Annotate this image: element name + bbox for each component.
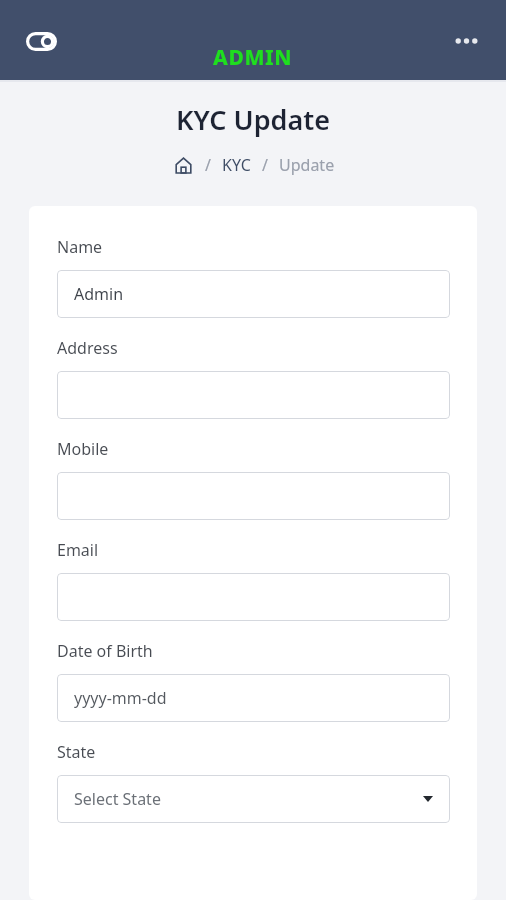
button[interactable]: yyyy-mm-dd (57, 674, 450, 722)
button[interactable]: Toggle navigation (15, 19, 67, 63)
button[interactable] (57, 573, 450, 621)
button[interactable] (57, 371, 450, 419)
button[interactable]: Admin (57, 270, 450, 318)
button[interactable]: ADMIN (213, 43, 293, 72)
staticText: Date of Birth (57, 640, 153, 662)
button[interactable]: Select State (57, 775, 450, 823)
button[interactable]: Home (172, 154, 194, 176)
staticText: Select State (74, 788, 161, 810)
staticText: / (205, 154, 211, 176)
staticText: Mobile (57, 438, 109, 460)
staticText: yyyy-mm-dd (74, 687, 167, 709)
staticText: State (57, 741, 96, 763)
staticText: Address (57, 337, 118, 359)
staticText: Name (57, 236, 103, 258)
button[interactable]: More options (444, 22, 488, 60)
staticText: Admin (74, 283, 124, 305)
staticText: KYC Update (176, 101, 330, 138)
staticText: Email (57, 539, 99, 561)
button[interactable]: KYC (222, 154, 251, 176)
staticText: Update (279, 154, 335, 176)
button[interactable] (57, 472, 450, 520)
staticText: / (262, 154, 268, 176)
